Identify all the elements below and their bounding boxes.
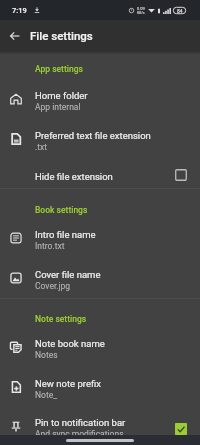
- staticText: Intro.txt: [35, 241, 65, 251]
- staticText: Preferred text file extension: [35, 130, 151, 141]
- staticText: Pin to notification bar: [35, 417, 126, 428]
- staticText: Note_: [35, 390, 58, 400]
- button[interactable]: Toggle: [171, 165, 191, 185]
- staticText: .txt: [35, 142, 48, 152]
- staticText: Cover.jpg: [35, 281, 71, 291]
- button[interactable]: Note book name: [0, 327, 200, 367]
- staticText: Notes: [35, 350, 58, 360]
- button[interactable]: Back: [0, 20, 30, 51]
- staticText: 84: [177, 8, 183, 14]
- button[interactable]: Cover file name: [0, 258, 200, 298]
- staticText: File settings: [30, 29, 93, 42]
- staticText: Note book name: [35, 338, 105, 349]
- button[interactable]: Intro file name: [0, 218, 200, 258]
- staticText: Hide file extension: [35, 171, 171, 182]
- button[interactable]: Pin to notification bar: [0, 407, 200, 445]
- staticText: 0.09: [137, 6, 145, 11]
- staticText: New note prefix: [35, 378, 101, 389]
- staticText: And sync modifications: [35, 429, 124, 439]
- other: Home gesture: [66, 439, 134, 442]
- staticText: Home folder: [35, 90, 88, 101]
- staticText: Book settings: [35, 205, 88, 215]
- button[interactable]: Toggle: [171, 419, 191, 439]
- staticText: Note settings: [35, 314, 87, 324]
- button[interactable]: New note prefix: [0, 367, 200, 407]
- button[interactable]: Preferred text file extension: [0, 119, 200, 159]
- staticText: App settings: [35, 64, 83, 74]
- staticText: 7:19: [12, 6, 27, 15]
- button[interactable]: Hide file extension: [0, 159, 200, 188]
- staticText: KB/s: [137, 11, 145, 15]
- button[interactable]: Home folder: [0, 79, 200, 119]
- staticText: App internal: [35, 102, 81, 112]
- staticText: Intro file name: [35, 229, 96, 240]
- staticText: Cover file name: [35, 269, 101, 280]
